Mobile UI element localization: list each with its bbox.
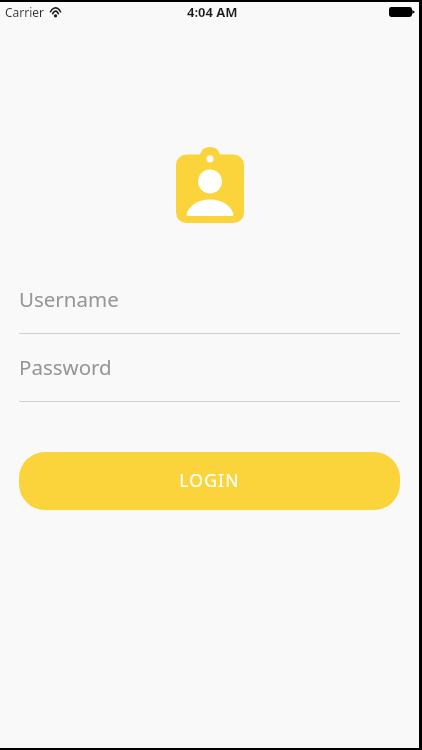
staticText: Username	[19, 285, 119, 313]
staticText: Password	[19, 353, 112, 381]
button[interactable]: Password	[0, 353, 419, 402]
other: Battery	[389, 7, 415, 17]
button[interactable]: Username	[0, 285, 419, 334]
button[interactable]: LOGIN	[19, 452, 400, 510]
staticText: LOGIN	[179, 468, 240, 492]
staticText: Carrier	[5, 4, 45, 20]
staticText: 4:04 AM	[187, 3, 238, 21]
other: Wi-Fi	[49, 7, 62, 17]
